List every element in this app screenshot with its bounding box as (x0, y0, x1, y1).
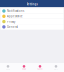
staticText: Chats (22, 68, 26, 70)
button[interactable]: Saved (32, 63, 48, 72)
staticText: Home (6, 68, 10, 70)
button[interactable]: Notifications (1, 8, 63, 13)
button[interactable]: Privacy (1, 19, 63, 24)
staticText: Saved (37, 68, 42, 70)
staticText: General (7, 25, 18, 29)
button[interactable]: Home (0, 63, 16, 72)
staticText: Privacy (7, 20, 15, 23)
button[interactable]: General (1, 24, 63, 29)
button[interactable]: Chats (16, 63, 32, 72)
staticText: More (54, 68, 58, 70)
button[interactable]: More (48, 63, 64, 72)
staticText: Appearance (7, 14, 23, 18)
staticText: Settings (26, 2, 37, 6)
staticText: Notifications (7, 9, 24, 13)
button[interactable]: Appearance (1, 14, 63, 19)
